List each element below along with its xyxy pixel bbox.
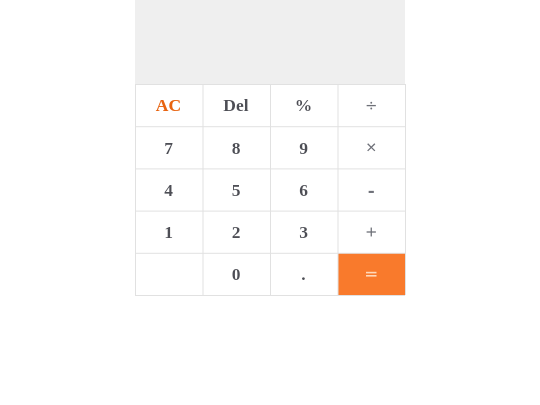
button[interactable] [135,84,203,126]
button[interactable] [270,168,338,210]
button[interactable] [135,211,203,253]
button[interactable]: Divide [338,84,406,126]
button[interactable]: Plus [338,211,406,253]
button[interactable] [203,253,271,295]
button[interactable] [203,84,271,126]
button[interactable] [270,211,338,253]
button[interactable] [135,168,203,210]
button[interactable]: Multiply [338,126,406,168]
button[interactable] [135,126,203,168]
button[interactable] [135,253,203,295]
button[interactable]: Equals [338,253,406,295]
button[interactable] [203,168,271,210]
button[interactable] [270,84,338,126]
button[interactable]: Minus [338,168,406,210]
button[interactable] [203,126,271,168]
button[interactable] [203,211,271,253]
button[interactable] [270,126,338,168]
button[interactable] [270,253,338,295]
